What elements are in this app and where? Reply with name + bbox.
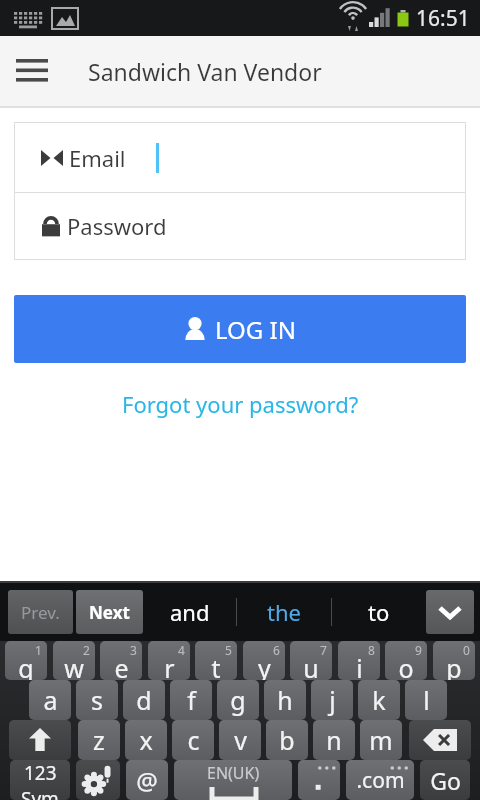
button[interactable]: 3 <box>100 641 142 680</box>
staticText: l <box>423 683 430 717</box>
button[interactable]: 2 <box>53 641 95 680</box>
staticText: x <box>139 723 153 757</box>
button[interactable]: c <box>172 720 214 760</box>
button[interactable]: @ <box>126 760 168 800</box>
button[interactable]: 5 <box>195 641 237 680</box>
button[interactable]: Period <box>298 760 340 800</box>
staticText: v <box>234 723 247 757</box>
staticText: j <box>329 683 336 717</box>
button[interactable]: the <box>259 589 309 635</box>
button[interactable]: Password <box>14 193 466 259</box>
staticText: 4 <box>178 642 185 658</box>
staticText: Next <box>89 601 130 624</box>
button[interactable]: n <box>313 720 355 760</box>
staticText: f <box>187 683 196 717</box>
button[interactable]: h <box>264 680 306 720</box>
staticText: Go <box>430 765 461 796</box>
button[interactable]: m <box>360 720 402 760</box>
button[interactable]: 123 <box>10 760 70 800</box>
staticText: EN(UK) <box>207 762 260 784</box>
staticText: 2 <box>83 642 90 658</box>
button[interactable]: k <box>358 680 400 720</box>
staticText: g <box>230 683 246 717</box>
staticText: LOG IN <box>215 313 296 346</box>
staticText: Sym <box>21 786 59 800</box>
staticText: r <box>164 651 175 680</box>
button[interactable]: 6 <box>243 641 285 680</box>
button[interactable]: Space <box>174 760 292 800</box>
button[interactable]: Backspace <box>409 720 471 760</box>
staticText: .com <box>356 766 405 795</box>
button[interactable]: 8 <box>338 641 380 680</box>
button[interactable]: Shift <box>9 720 71 760</box>
staticText: Email <box>69 143 126 173</box>
button[interactable]: Next <box>76 590 143 634</box>
staticText: z <box>93 723 105 757</box>
staticText: 6 <box>273 642 280 658</box>
button[interactable]: Prev. <box>8 590 73 634</box>
staticText: m <box>369 723 393 757</box>
staticText: a <box>43 683 58 717</box>
button[interactable]: 7 <box>290 641 332 680</box>
button[interactable]: g <box>217 680 259 720</box>
staticText: o <box>398 651 414 680</box>
button[interactable]: .com <box>346 760 414 800</box>
staticText: @ <box>136 764 158 797</box>
button[interactable]: x <box>125 720 167 760</box>
staticText: 5 <box>225 642 232 658</box>
button[interactable]: 0 <box>433 641 475 680</box>
staticText: q <box>18 651 34 680</box>
staticText: Password <box>67 211 167 241</box>
button[interactable]: 9 <box>385 641 427 680</box>
staticText: 3 <box>130 642 137 658</box>
button[interactable]: d <box>123 680 165 720</box>
button[interactable]: a <box>29 680 71 720</box>
button[interactable]: l <box>405 680 447 720</box>
staticText: b <box>279 723 295 757</box>
staticText: t <box>211 651 221 680</box>
staticText: 9 <box>415 642 422 658</box>
button[interactable]: j <box>311 680 353 720</box>
button[interactable]: to <box>360 589 398 635</box>
staticText: s <box>91 683 103 717</box>
staticText: 123 <box>24 760 57 786</box>
button[interactable]: 1 <box>5 641 47 680</box>
button[interactable]: LOG IN <box>14 295 466 363</box>
button[interactable]: z <box>78 720 120 760</box>
staticText: w <box>64 651 84 680</box>
button[interactable]: Email <box>14 123 466 192</box>
button[interactable]: s <box>76 680 118 720</box>
staticText: e <box>114 651 129 680</box>
button[interactable]: Forgot your password? <box>112 385 369 423</box>
button[interactable]: Go <box>420 760 470 800</box>
staticText: 7 <box>320 642 327 658</box>
staticText: y <box>258 651 271 680</box>
staticText: 1 <box>35 642 42 658</box>
staticText: k <box>372 683 386 717</box>
staticText: h <box>277 683 293 717</box>
button[interactable]: and <box>162 589 218 635</box>
button[interactable]: Hide keyboard <box>426 590 474 634</box>
staticText: 0 <box>463 642 470 658</box>
staticText: 8 <box>368 642 375 658</box>
button[interactable]: v <box>219 720 261 760</box>
button[interactable]: b <box>266 720 308 760</box>
button[interactable]: Settings and voice input <box>76 760 120 800</box>
button[interactable]: 4 <box>148 641 190 680</box>
button[interactable]: Open navigation menu <box>8 47 56 95</box>
staticText: d <box>136 683 152 717</box>
staticText: n <box>326 723 342 757</box>
staticText: 16:51 <box>416 4 470 33</box>
staticText: i <box>356 651 363 680</box>
staticText: c <box>187 723 200 757</box>
staticText: Prev. <box>21 601 60 624</box>
staticText: p <box>446 651 462 680</box>
staticText: Sandwich Van Vendor <box>88 56 322 87</box>
staticText: u <box>303 651 319 680</box>
button[interactable]: f <box>170 680 212 720</box>
